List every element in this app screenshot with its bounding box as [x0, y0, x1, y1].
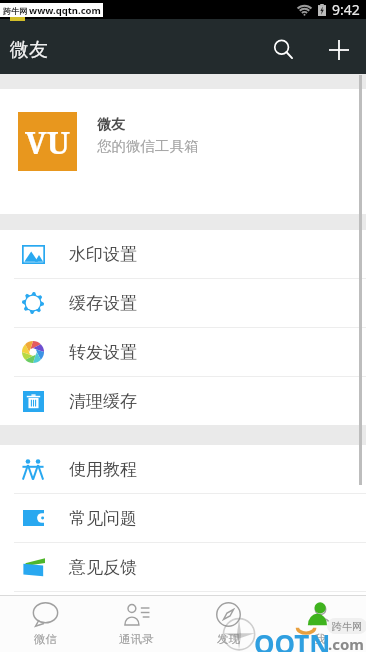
staticText: 您的微信工具箱 [97, 137, 199, 155]
button[interactable]: VU [0, 89, 366, 214]
button[interactable]: 通讯录 [91, 596, 182, 652]
button[interactable]: 常见问题 [0, 494, 366, 542]
staticText: 使用教程 [69, 459, 137, 480]
staticText: QQTN [254, 626, 331, 652]
staticText: 跨牛网 [3, 6, 27, 16]
staticText: 意见反馈 [69, 557, 137, 578]
staticText: 常见问题 [69, 508, 137, 529]
staticText: 跨牛网 [332, 620, 362, 633]
button[interactable]: 缓存设置 [0, 279, 366, 327]
staticText: 9:42 [332, 0, 360, 19]
staticText: 通讯录 [119, 632, 154, 646]
button[interactable]: Search [256, 19, 311, 74]
button[interactable]: 转发设置 [0, 328, 366, 376]
staticText: 我 [314, 632, 326, 646]
staticText: 发现 [217, 632, 240, 646]
staticText: 微友 [97, 116, 125, 134]
staticText: 转发设置 [69, 342, 137, 363]
staticText: VU [25, 121, 70, 163]
button[interactable]: 微信 [0, 596, 91, 652]
staticText: 微友 [10, 38, 48, 62]
staticText: 清理缓存 [69, 391, 137, 412]
button[interactable]: 我 [274, 596, 366, 652]
button[interactable]: 意见反馈 [0, 543, 366, 591]
staticText: 微信 [34, 632, 57, 646]
staticText: www.qqtn.com [29, 4, 101, 17]
button[interactable]: 发现 [182, 596, 274, 652]
staticText: 水印设置 [69, 244, 137, 265]
button[interactable]: Add [311, 19, 366, 74]
staticText: .com [328, 634, 364, 652]
button[interactable]: 清理缓存 [0, 377, 366, 425]
button[interactable]: 水印设置 [0, 230, 366, 278]
staticText: 缓存设置 [69, 293, 137, 314]
button[interactable]: 使用教程 [0, 445, 366, 493]
